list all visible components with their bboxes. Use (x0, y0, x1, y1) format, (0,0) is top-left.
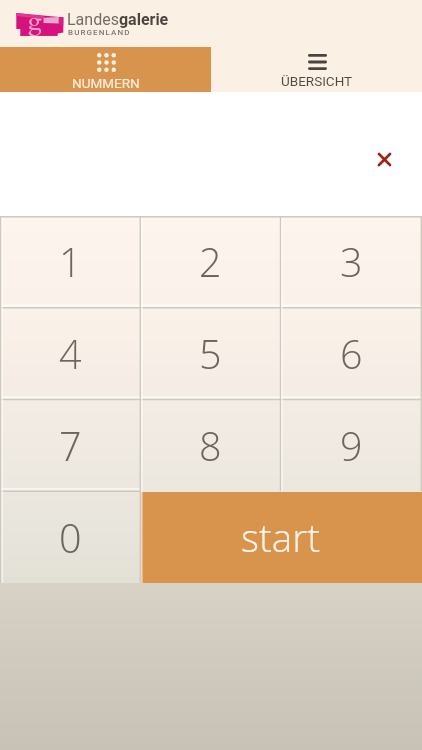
button[interactable]: 7 (0, 400, 140, 492)
staticText: 0 (59, 511, 82, 565)
button[interactable]: 3 (280, 216, 422, 308)
staticText: Landesgalerie (67, 10, 169, 29)
staticText: 5 (199, 327, 222, 381)
button[interactable]: 2 (140, 216, 280, 308)
button[interactable]: 5 (140, 308, 280, 400)
button[interactable]: 4 (0, 308, 140, 400)
button[interactable]: 8 (140, 400, 280, 492)
staticText: ÜBERSICHT (281, 73, 353, 89)
button[interactable]: ÜBERSICHT (211, 47, 422, 92)
staticText: 2 (199, 235, 222, 289)
staticText: 6 (340, 327, 363, 381)
staticText: start (241, 511, 321, 563)
button[interactable]: NUMMERN (0, 47, 211, 92)
button[interactable]: 0 (0, 492, 140, 583)
staticText: 4 (59, 327, 82, 381)
button[interactable]: 6 (280, 308, 422, 400)
staticText: 9 (340, 419, 363, 473)
staticText: NUMMERN (72, 75, 140, 91)
button[interactable]: 9 (280, 400, 422, 492)
staticText: BURGENLAND (68, 28, 131, 37)
button[interactable]: start (140, 492, 422, 583)
staticText: g (28, 5, 42, 37)
button[interactable]: 1 (0, 216, 140, 308)
staticText: 3 (340, 235, 363, 289)
staticText: 8 (199, 419, 222, 473)
button[interactable]: Clear input (372, 147, 396, 171)
staticText: 1 (59, 235, 82, 289)
staticText: 7 (59, 419, 82, 473)
